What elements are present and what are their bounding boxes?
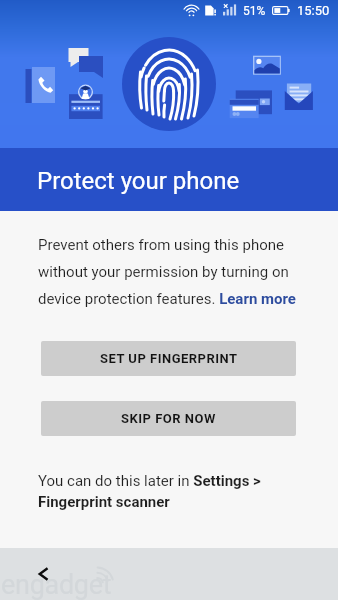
staticText: engadget (1, 569, 112, 600)
staticText: 15:50 (297, 3, 330, 18)
staticText: Protect your phone (37, 167, 240, 195)
button[interactable]: Back (23, 554, 63, 594)
button[interactable]: SET UP FINGERPRINT (41, 341, 296, 376)
staticText: You can do this later in Settings > Fing… (38, 472, 293, 511)
staticText: SET UP FINGERPRINT (100, 351, 238, 366)
staticText: SKIP FOR NOW (121, 411, 216, 426)
staticText: Prevent others from using this phone wit… (38, 236, 304, 308)
button[interactable]: SKIP FOR NOW (41, 401, 296, 436)
staticText: 51% (243, 4, 266, 18)
